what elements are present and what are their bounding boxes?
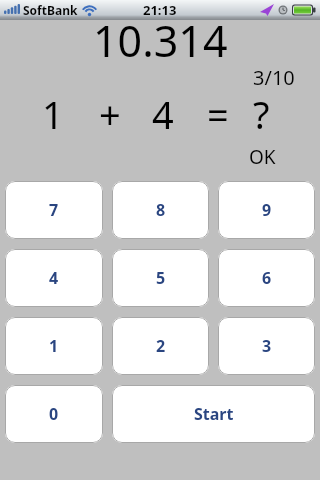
staticText: + bbox=[99, 88, 121, 140]
button[interactable]: 3 bbox=[218, 317, 315, 375]
staticText: 1 bbox=[42, 88, 64, 140]
button[interactable]: 6 bbox=[218, 249, 315, 307]
staticText: 10.314 bbox=[93, 11, 228, 59]
staticText: 5 bbox=[156, 267, 166, 289]
staticText: 7 bbox=[49, 199, 59, 221]
button[interactable]: 4 bbox=[5, 249, 103, 307]
button[interactable]: OK bbox=[232, 142, 292, 172]
button[interactable]: 8 bbox=[112, 181, 209, 239]
staticText: Start bbox=[194, 403, 234, 425]
button[interactable]: 0 bbox=[5, 385, 103, 443]
staticText: 3/10 bbox=[253, 64, 295, 88]
staticText: 1 bbox=[49, 335, 59, 357]
button[interactable]: 9 bbox=[218, 181, 315, 239]
button[interactable]: 1 bbox=[5, 317, 103, 375]
staticText: 4 bbox=[152, 88, 174, 140]
button[interactable]: 5 bbox=[112, 249, 209, 307]
staticText: OK bbox=[249, 144, 276, 170]
staticText: 9 bbox=[262, 199, 272, 221]
staticText: ? bbox=[253, 88, 270, 140]
staticText: 4 bbox=[49, 267, 59, 289]
staticText: 3 bbox=[262, 335, 272, 357]
staticText: 2 bbox=[156, 335, 166, 357]
button[interactable]: Start bbox=[112, 385, 315, 443]
staticText: 21:13 bbox=[143, 1, 177, 19]
button[interactable]: 2 bbox=[112, 317, 209, 375]
staticText: = bbox=[207, 88, 229, 140]
staticText: SoftBank bbox=[23, 2, 78, 18]
staticText: 6 bbox=[262, 267, 272, 289]
staticText: 0 bbox=[49, 403, 59, 425]
button[interactable]: 7 bbox=[5, 181, 103, 239]
staticText: 8 bbox=[156, 199, 166, 221]
